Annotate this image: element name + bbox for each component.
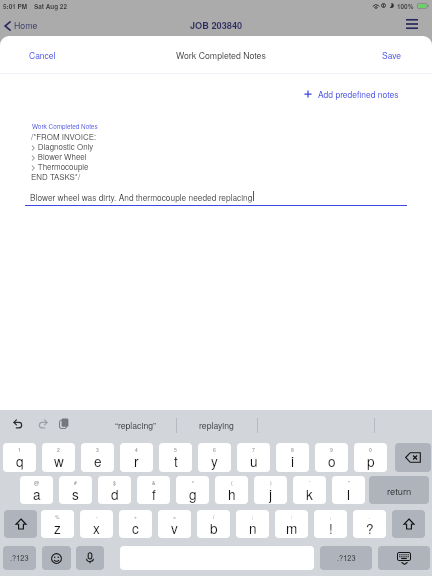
staticText: “replacing” — [115, 419, 156, 431]
button[interactable]: = — [158, 510, 191, 538]
button[interactable]: & — [137, 476, 170, 504]
staticText: l — [347, 484, 351, 503]
button[interactable]: Backspace — [395, 443, 431, 472]
staticText: h — [228, 484, 236, 503]
button[interactable]: Shift — [4, 510, 37, 538]
staticText: ) — [270, 479, 272, 486]
button[interactable]: Save — [373, 36, 411, 73]
button[interactable]: Cancel — [20, 36, 65, 73]
staticText: k — [306, 484, 313, 503]
button[interactable]: @ — [20, 476, 53, 504]
button[interactable]: / — [197, 510, 230, 538]
button[interactable]: $ — [98, 476, 131, 504]
button[interactable]: 4 — [120, 443, 153, 472]
staticText: 7 — [252, 446, 255, 453]
button[interactable]: 1 — [3, 443, 36, 472]
button[interactable]: Undo — [7, 413, 29, 435]
staticText: o — [328, 451, 336, 470]
staticText: $ — [113, 479, 116, 486]
staticText: ! — [329, 518, 333, 537]
staticText: 6 — [213, 446, 216, 453]
button[interactable]: . — [353, 510, 386, 538]
staticText: Work Completed Notes — [32, 122, 98, 131]
staticText: t — [174, 451, 178, 470]
staticText: Sat Aug 22 — [34, 2, 67, 11]
button[interactable]: # — [59, 476, 92, 504]
staticText: 2 — [57, 446, 60, 453]
staticText: return — [387, 484, 412, 497]
button[interactable]: .?123 — [3, 546, 36, 570]
button[interactable]: Shift — [392, 510, 425, 538]
staticText: u — [250, 451, 258, 470]
button[interactable]: Home — [0, 16, 46, 35]
staticText: 9 — [330, 446, 333, 453]
staticText: - — [96, 513, 98, 520]
staticText: v — [171, 518, 178, 537]
staticText: f — [152, 484, 156, 503]
button[interactable]: 8 — [276, 443, 309, 472]
staticText: Add predefined notes — [318, 88, 399, 100]
staticText: d — [111, 484, 119, 503]
staticText: 5:01 PM — [3, 2, 28, 11]
staticText: , — [330, 513, 332, 520]
staticText: g — [189, 484, 197, 503]
button[interactable]: 6 — [198, 443, 231, 472]
button[interactable]: “replacing” — [95, 410, 176, 440]
button[interactable]: Redo — [32, 413, 54, 435]
button[interactable]: - — [80, 510, 113, 538]
staticText: Work Completed Notes — [176, 49, 266, 62]
staticText: ; — [252, 513, 254, 520]
button[interactable]: 3 — [81, 443, 114, 472]
staticText: # — [74, 479, 77, 486]
button[interactable]: ) — [254, 476, 287, 504]
staticText: ? — [366, 518, 374, 537]
staticText: : — [291, 513, 293, 520]
button[interactable]: + — [119, 510, 152, 538]
staticText: . — [369, 513, 371, 520]
button[interactable]: % — [41, 510, 74, 538]
button[interactable]: 5 — [159, 443, 192, 472]
staticText: Save — [382, 49, 402, 61]
staticText: 1 — [18, 446, 21, 453]
staticText: z — [54, 518, 61, 537]
button[interactable]: ; — [236, 510, 269, 538]
button[interactable]: Hide keyboard — [378, 546, 430, 570]
button[interactable]: .?123 — [320, 546, 372, 570]
button[interactable]: ' — [293, 476, 326, 504]
button[interactable]: ( — [215, 476, 248, 504]
staticText: Cancel — [29, 49, 56, 61]
staticText: ' — [309, 479, 310, 486]
staticText: Home — [14, 19, 38, 32]
staticText: & — [152, 479, 156, 486]
staticText: JOB 203840 — [190, 19, 243, 32]
button[interactable]: return — [369, 476, 429, 504]
button[interactable]: Paste — [53, 412, 75, 434]
button[interactable]: : — [275, 510, 308, 538]
button[interactable]: Emoji — [42, 546, 71, 570]
staticText: j — [269, 484, 273, 503]
button[interactable]: , — [314, 510, 347, 538]
button[interactable]: * — [176, 476, 209, 504]
button[interactable]: 2 — [42, 443, 75, 472]
button[interactable]: 9 — [315, 443, 348, 472]
staticText: 8 — [291, 446, 294, 453]
staticText: i — [291, 451, 295, 470]
button[interactable]: Menu — [399, 14, 425, 36]
button[interactable]: Dictation — [76, 546, 104, 570]
staticText: b — [210, 518, 218, 537]
staticText: y — [211, 451, 218, 470]
button[interactable]: " — [332, 476, 365, 504]
staticText: 5 — [174, 446, 177, 453]
button[interactable]: 7 — [237, 443, 270, 472]
staticText: 4 — [135, 446, 138, 453]
staticText: w — [54, 451, 64, 470]
staticText: s — [72, 484, 79, 503]
button[interactable]: replaying — [176, 410, 257, 440]
staticText: .?123 — [337, 553, 356, 564]
staticText: = — [173, 513, 176, 520]
button[interactable]: 0 — [354, 443, 387, 472]
staticText: + — [134, 513, 137, 520]
button[interactable]: Add predefined notes — [296, 83, 407, 105]
staticText: x — [93, 518, 100, 537]
